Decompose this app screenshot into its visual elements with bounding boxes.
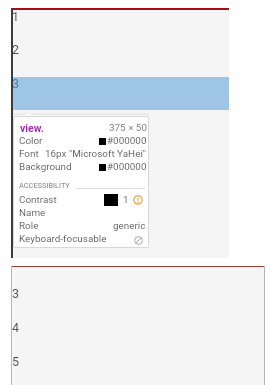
staticText: Role (19, 220, 39, 232)
button[interactable]: view. (14, 117, 148, 247)
staticText: 3 (12, 76, 20, 91)
staticText: 5 (12, 354, 20, 369)
staticText: Font (19, 148, 39, 160)
staticText: #000000 (107, 135, 147, 147)
staticText: view. (20, 122, 44, 134)
other: Not keyboard focusable (134, 236, 143, 245)
staticText: Keyboard-focusable (19, 233, 107, 245)
staticText: 2 (12, 42, 20, 57)
staticText: 3 (12, 286, 20, 301)
staticText: 1 (12, 9, 20, 24)
other: Contrast warning (133, 195, 143, 205)
staticText: generic (113, 220, 146, 232)
staticText: 16px "Microsoft YaHei" (45, 148, 146, 160)
staticText: #000000 (107, 161, 147, 173)
staticText: 375 × 50 (109, 122, 147, 134)
staticText: ACCESSIBILITY (19, 181, 70, 190)
staticText: 4 (12, 320, 20, 335)
staticText: Color (19, 135, 43, 147)
staticText: Background (19, 161, 72, 173)
staticText: Name (19, 207, 46, 219)
staticText: Contrast (19, 194, 57, 206)
staticText: 1 (123, 194, 129, 206)
